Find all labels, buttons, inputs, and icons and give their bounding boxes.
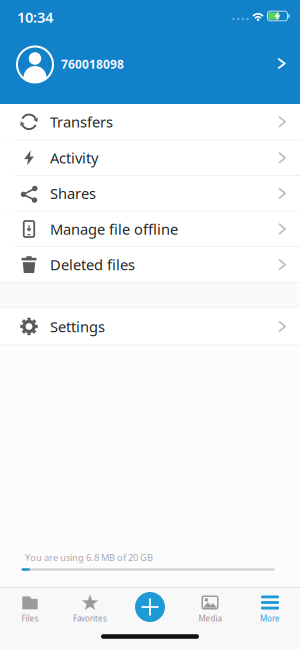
button[interactable]: Deleted files bbox=[0, 247, 300, 282]
staticText: 760018098 bbox=[61, 56, 124, 72]
button[interactable]: Transfers bbox=[0, 104, 300, 140]
staticText: Transfers bbox=[50, 112, 113, 132]
button[interactable]: Shares bbox=[0, 176, 300, 211]
button[interactable]: Files bbox=[0, 587, 60, 631]
staticText: More bbox=[260, 613, 280, 624]
staticText: Shares bbox=[50, 184, 96, 203]
button[interactable]: More bbox=[240, 587, 300, 631]
button[interactable]: Media bbox=[180, 587, 240, 631]
button[interactable]: Settings bbox=[0, 308, 300, 345]
staticText: Activity bbox=[50, 148, 98, 168]
button[interactable]: 760018098 bbox=[0, 30, 300, 104]
staticText: You are using 6.8 MB of 20 GB bbox=[25, 551, 153, 564]
button[interactable]: Favorites bbox=[60, 587, 120, 631]
staticText: Deleted files bbox=[50, 255, 135, 274]
staticText: Settings bbox=[50, 317, 105, 336]
staticText: Manage file offline bbox=[50, 219, 178, 239]
button[interactable]: Activity bbox=[0, 140, 300, 175]
button[interactable]: Add bbox=[120, 585, 180, 629]
staticText: Favorites bbox=[73, 613, 107, 624]
button[interactable]: Manage file offline bbox=[0, 212, 300, 246]
staticText: Media bbox=[198, 613, 221, 624]
staticText: 10:34 bbox=[17, 7, 53, 27]
staticText: Files bbox=[21, 613, 38, 624]
